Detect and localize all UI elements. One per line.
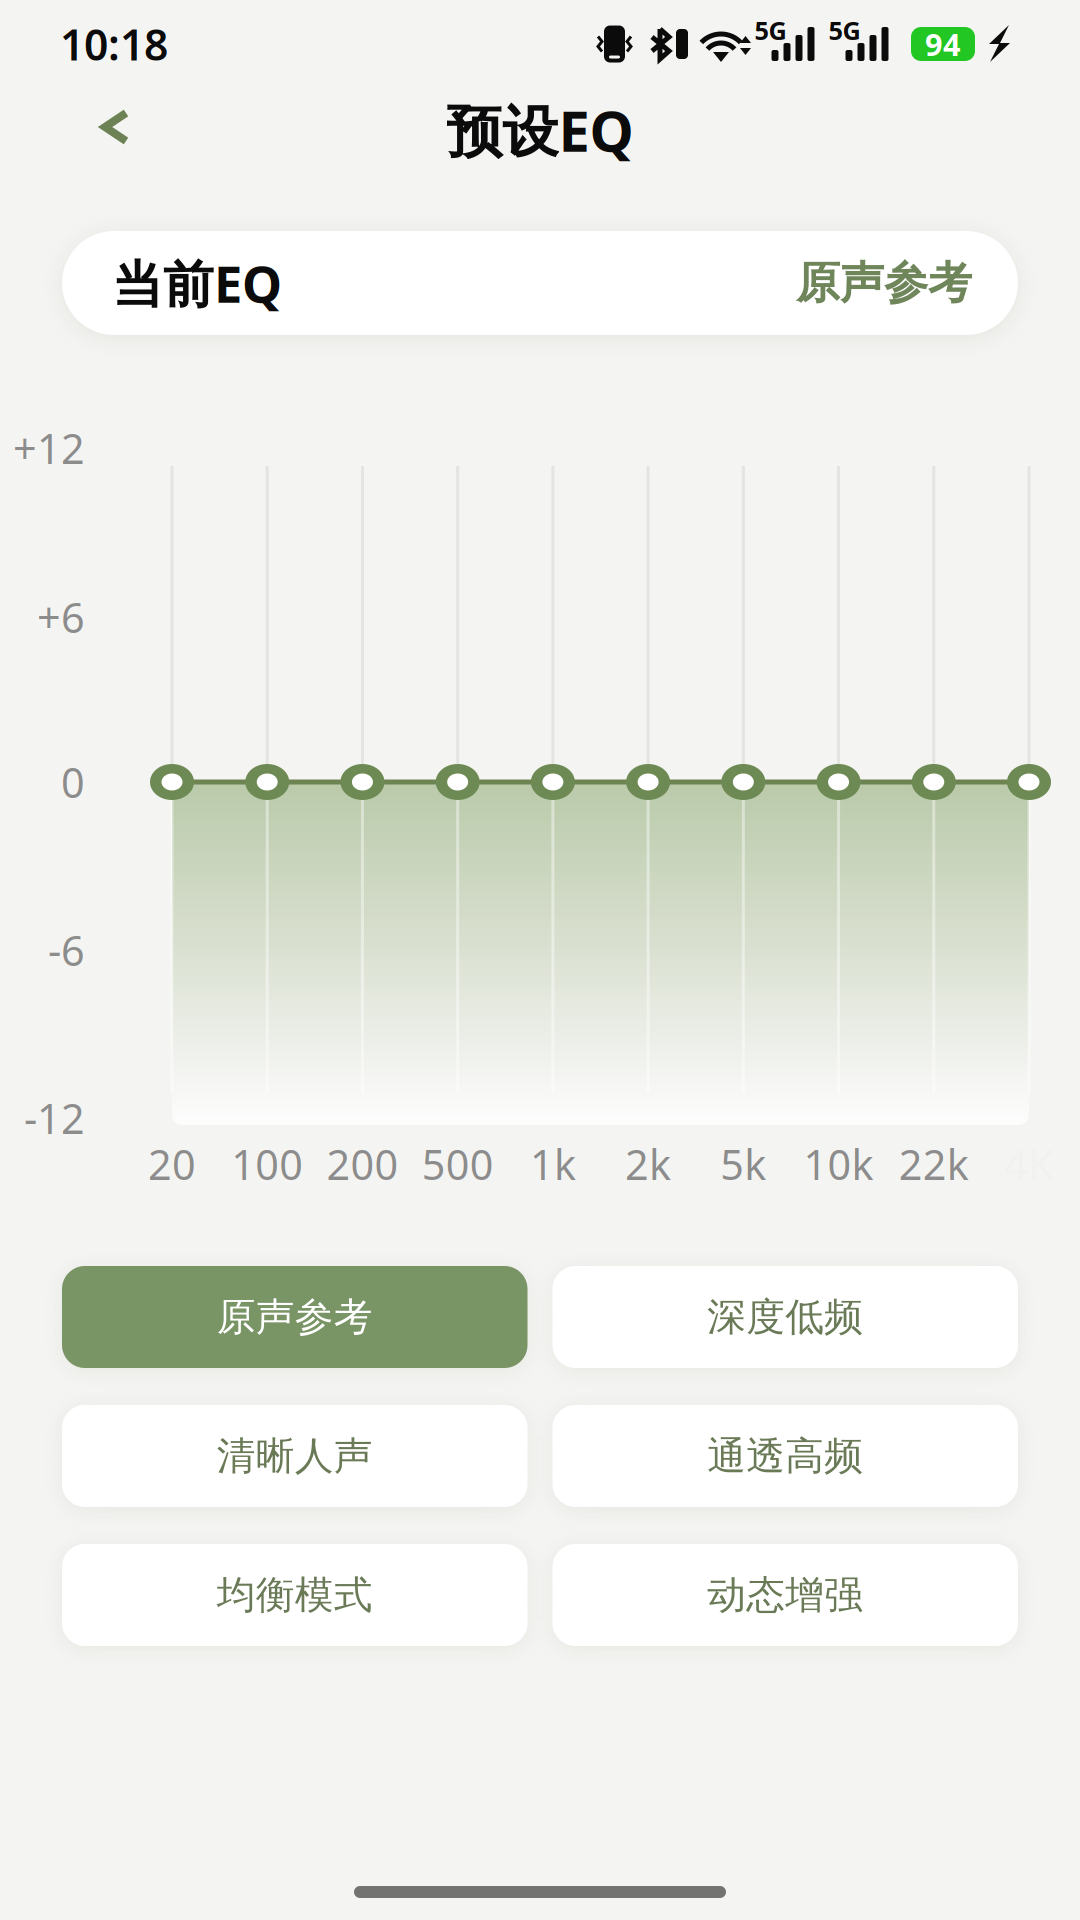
staticText: 10:18 [60, 16, 168, 72]
staticText: 原声参考 [796, 256, 972, 310]
staticText: 当前EQ [112, 249, 282, 317]
staticText: 动态增强 [707, 1571, 863, 1619]
button[interactable]: 清晰人声 [62, 1405, 527, 1507]
staticText: 200 [326, 1137, 398, 1191]
button[interactable]: 均衡模式 [62, 1544, 527, 1646]
staticText: 10k [804, 1137, 874, 1191]
staticText: 5G [828, 13, 860, 47]
staticText: 100 [231, 1137, 303, 1191]
staticText: 清晰人声 [217, 1432, 373, 1480]
staticText: 2k [625, 1137, 671, 1191]
staticText: 94 [925, 24, 961, 64]
staticText: 1k [530, 1137, 576, 1191]
staticText: 500 [422, 1137, 494, 1191]
button[interactable]: 原声参考 [62, 1266, 527, 1368]
staticText: 原声参考 [217, 1293, 373, 1341]
button[interactable]: 通透高频 [552, 1405, 1018, 1507]
staticText: -12 [24, 1091, 85, 1145]
staticText: 通透高频 [707, 1432, 863, 1480]
button[interactable]: 深度低频 [552, 1266, 1018, 1368]
staticText: 预设EQ [446, 93, 633, 167]
staticText: 均衡模式 [217, 1571, 373, 1619]
staticText: -6 [48, 923, 85, 977]
staticText: 20 [148, 1137, 196, 1191]
button[interactable]: 当前EQ [62, 231, 1018, 335]
staticText: 22k [899, 1137, 969, 1191]
staticText: 深度低频 [707, 1293, 863, 1341]
staticText: 5G [754, 13, 786, 47]
staticText: +12 [13, 421, 85, 475]
button[interactable]: 动态增强 [552, 1544, 1018, 1646]
staticText: 5k [720, 1137, 766, 1191]
staticText: +6 [37, 590, 85, 644]
button[interactable]: Back [68, 79, 164, 175]
staticText: 0 [61, 755, 85, 809]
